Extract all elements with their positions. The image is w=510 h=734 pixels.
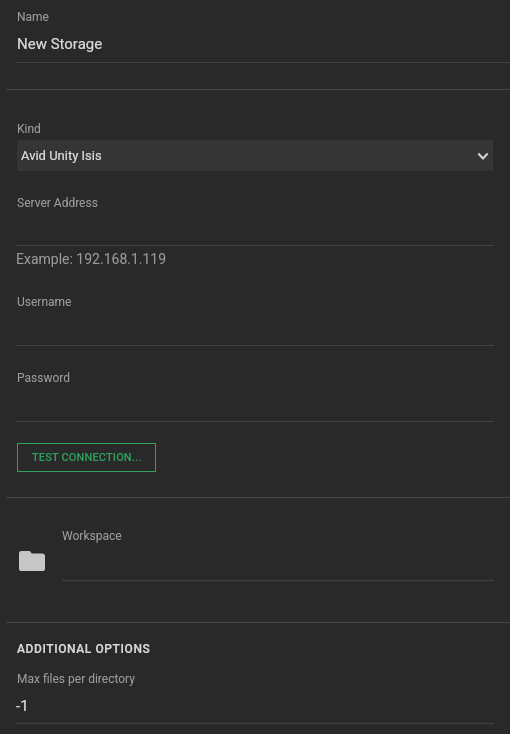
staticText: Avid Unity Isis	[21, 148, 102, 163]
staticText: New Storage	[17, 35, 103, 53]
button[interactable]	[16, 365, 494, 422]
staticText: ADDITIONAL OPTIONS	[17, 642, 151, 656]
button[interactable]	[16, 289, 494, 346]
staticText: Workspace	[62, 529, 122, 543]
other: Expand kind list	[474, 147, 492, 165]
staticText: TEST CONNECTION...	[32, 451, 142, 464]
staticText: Password	[17, 371, 71, 385]
staticText: Name	[17, 10, 49, 24]
button[interactable]	[16, 4, 510, 63]
button[interactable]	[16, 666, 494, 724]
button[interactable]	[62, 522, 494, 581]
button[interactable]: TEST CONNECTION...	[17, 443, 156, 472]
button[interactable]: Browse workspace folder	[14, 546, 50, 576]
button[interactable]	[16, 190, 494, 246]
staticText: Max files per directory	[17, 672, 135, 686]
staticText: Server Address	[17, 196, 98, 210]
staticText: Example: 192.168.1.119	[16, 251, 167, 267]
staticText: -1	[16, 697, 29, 715]
staticText: Kind	[17, 122, 41, 136]
staticText: Username	[17, 295, 72, 309]
button[interactable]: Avid Unity Isis	[17, 140, 493, 171]
